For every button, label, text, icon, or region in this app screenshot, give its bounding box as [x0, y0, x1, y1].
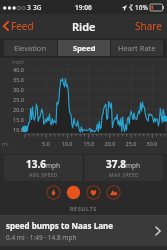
staticText: 30.0 [2, 86, 24, 93]
staticText: 10.0 [59, 140, 75, 147]
staticText: 10.0 [2, 126, 24, 133]
button[interactable]: Speed [58, 40, 110, 56]
button[interactable]: Heart [86, 185, 101, 200]
staticText: 3G [33, 3, 42, 12]
staticText: Ride [72, 19, 96, 34]
button[interactable]: Mark [46, 185, 61, 200]
staticText: AVG SPEED [29, 172, 58, 179]
staticText: Share [135, 19, 162, 33]
button[interactable]: Elevation [106, 185, 121, 200]
staticText: mph [46, 161, 61, 170]
button[interactable]: Feed [0, 15, 40, 37]
staticText: 25.0 [2, 96, 24, 103]
staticText: 37.8 [106, 157, 126, 171]
staticText: Feed [11, 19, 34, 33]
staticText: mph [2, 58, 24, 65]
staticText: speed bumps to Naas Lane [6, 220, 113, 231]
staticText: 35.0 [2, 76, 24, 83]
button[interactable]: speed bumps to Naas Lane [0, 216, 167, 246]
button[interactable]: 13.6 [4, 155, 83, 181]
button[interactable]: Share [130, 15, 167, 37]
staticText: 0.4 mi · 1:49 · 14.8 mph [6, 233, 77, 242]
staticText: 15.0 [2, 116, 24, 123]
staticText: RESULTS [70, 205, 97, 212]
staticText: 20.0 [2, 106, 24, 113]
staticText: 16% [135, 3, 148, 12]
staticText: Speed [73, 43, 96, 53]
staticText: MAX SPEED [109, 172, 139, 179]
staticText: 30.0 [144, 140, 160, 147]
staticText: 3 [27, 3, 31, 12]
staticText: 15.0 [81, 140, 97, 147]
staticText: Heart Rate [118, 43, 156, 53]
staticText: 19:06 [75, 3, 92, 12]
staticText: 25.0 [123, 140, 139, 147]
staticText: 13.6 [26, 157, 46, 171]
staticText: mi [2, 140, 18, 147]
staticText: 20.0 [102, 140, 118, 147]
staticText: 40.0 [2, 66, 24, 73]
staticText: mph [126, 161, 141, 170]
button[interactable]: Speed [66, 185, 81, 200]
staticText: 5.0 [38, 140, 54, 147]
button[interactable]: 37.8 [84, 155, 163, 181]
button[interactable]: Heart Rate [111, 40, 163, 56]
button[interactable]: Elevation [4, 40, 57, 56]
staticText: Elevation [14, 43, 47, 53]
